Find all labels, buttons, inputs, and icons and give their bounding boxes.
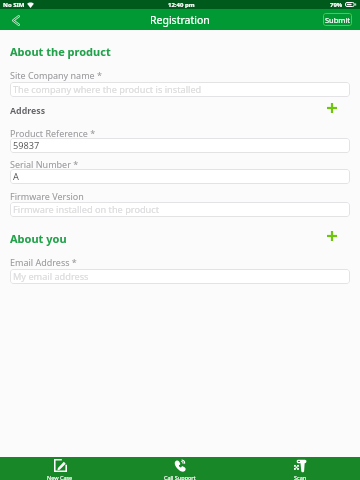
button: About the product [10, 44, 111, 59]
staticText: 59837 [13, 139, 40, 152]
button[interactable]: Add [324, 100, 340, 116]
staticText: Serial Number * [10, 158, 79, 170]
staticText: Email Address * [10, 256, 77, 268]
button[interactable]: Add [324, 228, 340, 244]
staticText: No SIM [3, 1, 25, 9]
staticText: Call Support [164, 474, 196, 480]
staticText: Product Reference * [10, 127, 96, 139]
button[interactable]: A [10, 169, 350, 184]
staticText: Scan [294, 474, 307, 480]
staticText: Firmware Version [10, 190, 84, 202]
button[interactable]: New Case [0, 457, 120, 480]
staticText: A [13, 170, 19, 183]
button[interactable]: Scan [240, 457, 360, 480]
staticText: 12:40 pm [168, 1, 195, 9]
staticText: Site Company name * [10, 69, 102, 81]
staticText: Submit [325, 15, 351, 25]
staticText: Firmware installed on the product [13, 203, 160, 216]
button[interactable]: Firmware installed on the product [10, 202, 350, 217]
button[interactable]: Call Support [120, 457, 240, 480]
staticText: 79% [330, 1, 343, 9]
staticText: The company where the product is install… [13, 83, 202, 96]
staticText: Registration [150, 13, 210, 27]
button[interactable]: Back [8, 12, 24, 28]
staticText: My email address [13, 270, 89, 283]
button[interactable]: The company where the product is install… [10, 82, 350, 97]
button[interactable]: My email address [10, 269, 350, 284]
button: About you [10, 231, 67, 246]
button[interactable]: Submit [323, 13, 352, 26]
button[interactable]: 59837 [10, 138, 350, 153]
staticText: Address [10, 105, 46, 117]
staticText: New Case [47, 474, 73, 480]
